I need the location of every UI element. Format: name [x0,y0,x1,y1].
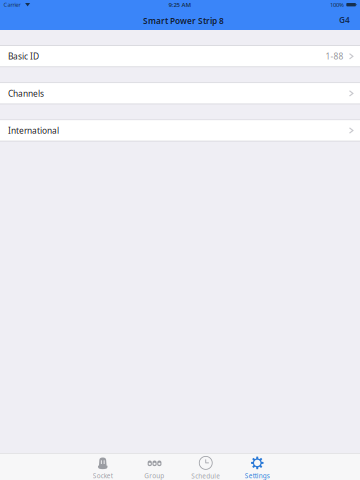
staticText: G4 [339,14,350,25]
button[interactable]: Group [128,453,180,480]
button[interactable]: Settings [231,453,283,480]
button[interactable]: Schedule [180,453,231,480]
staticText: 1-88 [325,51,343,62]
staticText: International [8,125,59,136]
button[interactable]: International [0,120,360,141]
button[interactable]: G4 [329,11,360,28]
staticText: 9:25 AM [168,1,191,9]
staticText: Basic ID [8,51,39,62]
staticText: Settings [245,471,270,480]
staticText: Smart Power Strip 8 [143,15,224,26]
button[interactable]: Socket [77,453,128,480]
staticText: 100% [330,1,344,9]
button[interactable]: Basic ID [0,46,360,67]
staticText: Group [144,471,164,480]
staticText: Channels [8,88,44,99]
staticText: Carrier [3,1,20,8]
staticText: Socket [93,471,113,480]
button[interactable]: Channels [0,83,360,104]
staticText: Schedule [191,472,220,480]
